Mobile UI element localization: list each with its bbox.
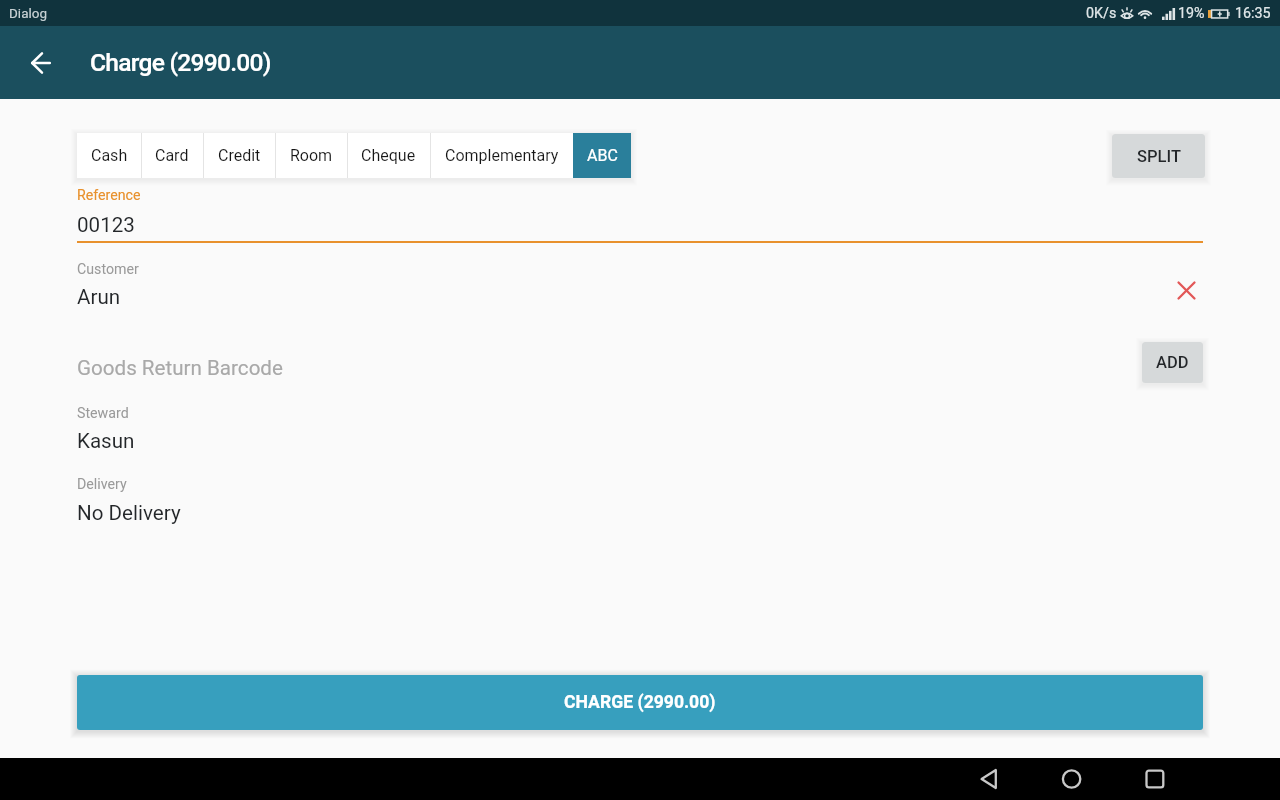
- button[interactable]: Home: [1050, 758, 1094, 800]
- staticText: 19%: [1178, 5, 1205, 22]
- button[interactable]: Cash: [77, 133, 141, 178]
- button[interactable]: Complementary: [430, 133, 573, 178]
- staticText: ADD: [1156, 353, 1189, 372]
- button[interactable]: Cheque: [347, 133, 430, 178]
- button[interactable]: Credit: [203, 133, 275, 178]
- button[interactable]: CHARGE (2990.00): [77, 675, 1203, 730]
- staticText: SPLIT: [1137, 147, 1181, 166]
- staticText: Cash: [91, 146, 128, 165]
- staticText: Complementary: [445, 146, 559, 165]
- staticText: CHARGE (2990.00): [564, 692, 716, 713]
- button[interactable]: Recent apps: [1133, 758, 1177, 800]
- staticText: Delivery: [77, 476, 127, 493]
- button[interactable]: ABC: [573, 133, 631, 178]
- staticText: Cheque: [361, 146, 416, 165]
- staticText: Goods Return Barcode: [77, 356, 283, 380]
- button[interactable]: Back: [19, 41, 63, 85]
- staticText: 0K/s: [1086, 5, 1117, 22]
- staticText: Room: [290, 146, 333, 165]
- staticText: Steward: [77, 405, 129, 422]
- staticText: Kasun: [77, 429, 135, 453]
- staticText: 00123: [77, 213, 135, 237]
- button[interactable]: Room: [275, 133, 347, 178]
- button[interactable]: Back: [966, 758, 1010, 800]
- staticText: Dialog: [9, 5, 48, 21]
- staticText: 16:35: [1235, 5, 1271, 22]
- staticText: No Delivery: [77, 501, 181, 525]
- staticText: Customer: [77, 261, 139, 278]
- button[interactable]: SPLIT: [1112, 134, 1205, 178]
- button[interactable]: ADD: [1142, 342, 1203, 383]
- button[interactable]: Clear customer: [1172, 276, 1201, 305]
- staticText: Reference: [77, 187, 141, 204]
- staticText: ABC: [587, 146, 618, 165]
- button[interactable]: Card: [141, 133, 203, 178]
- staticText: Charge (2990.00): [90, 48, 271, 77]
- staticText: Credit: [218, 146, 261, 165]
- staticText: Arun: [77, 285, 121, 309]
- staticText: Card: [155, 146, 189, 165]
